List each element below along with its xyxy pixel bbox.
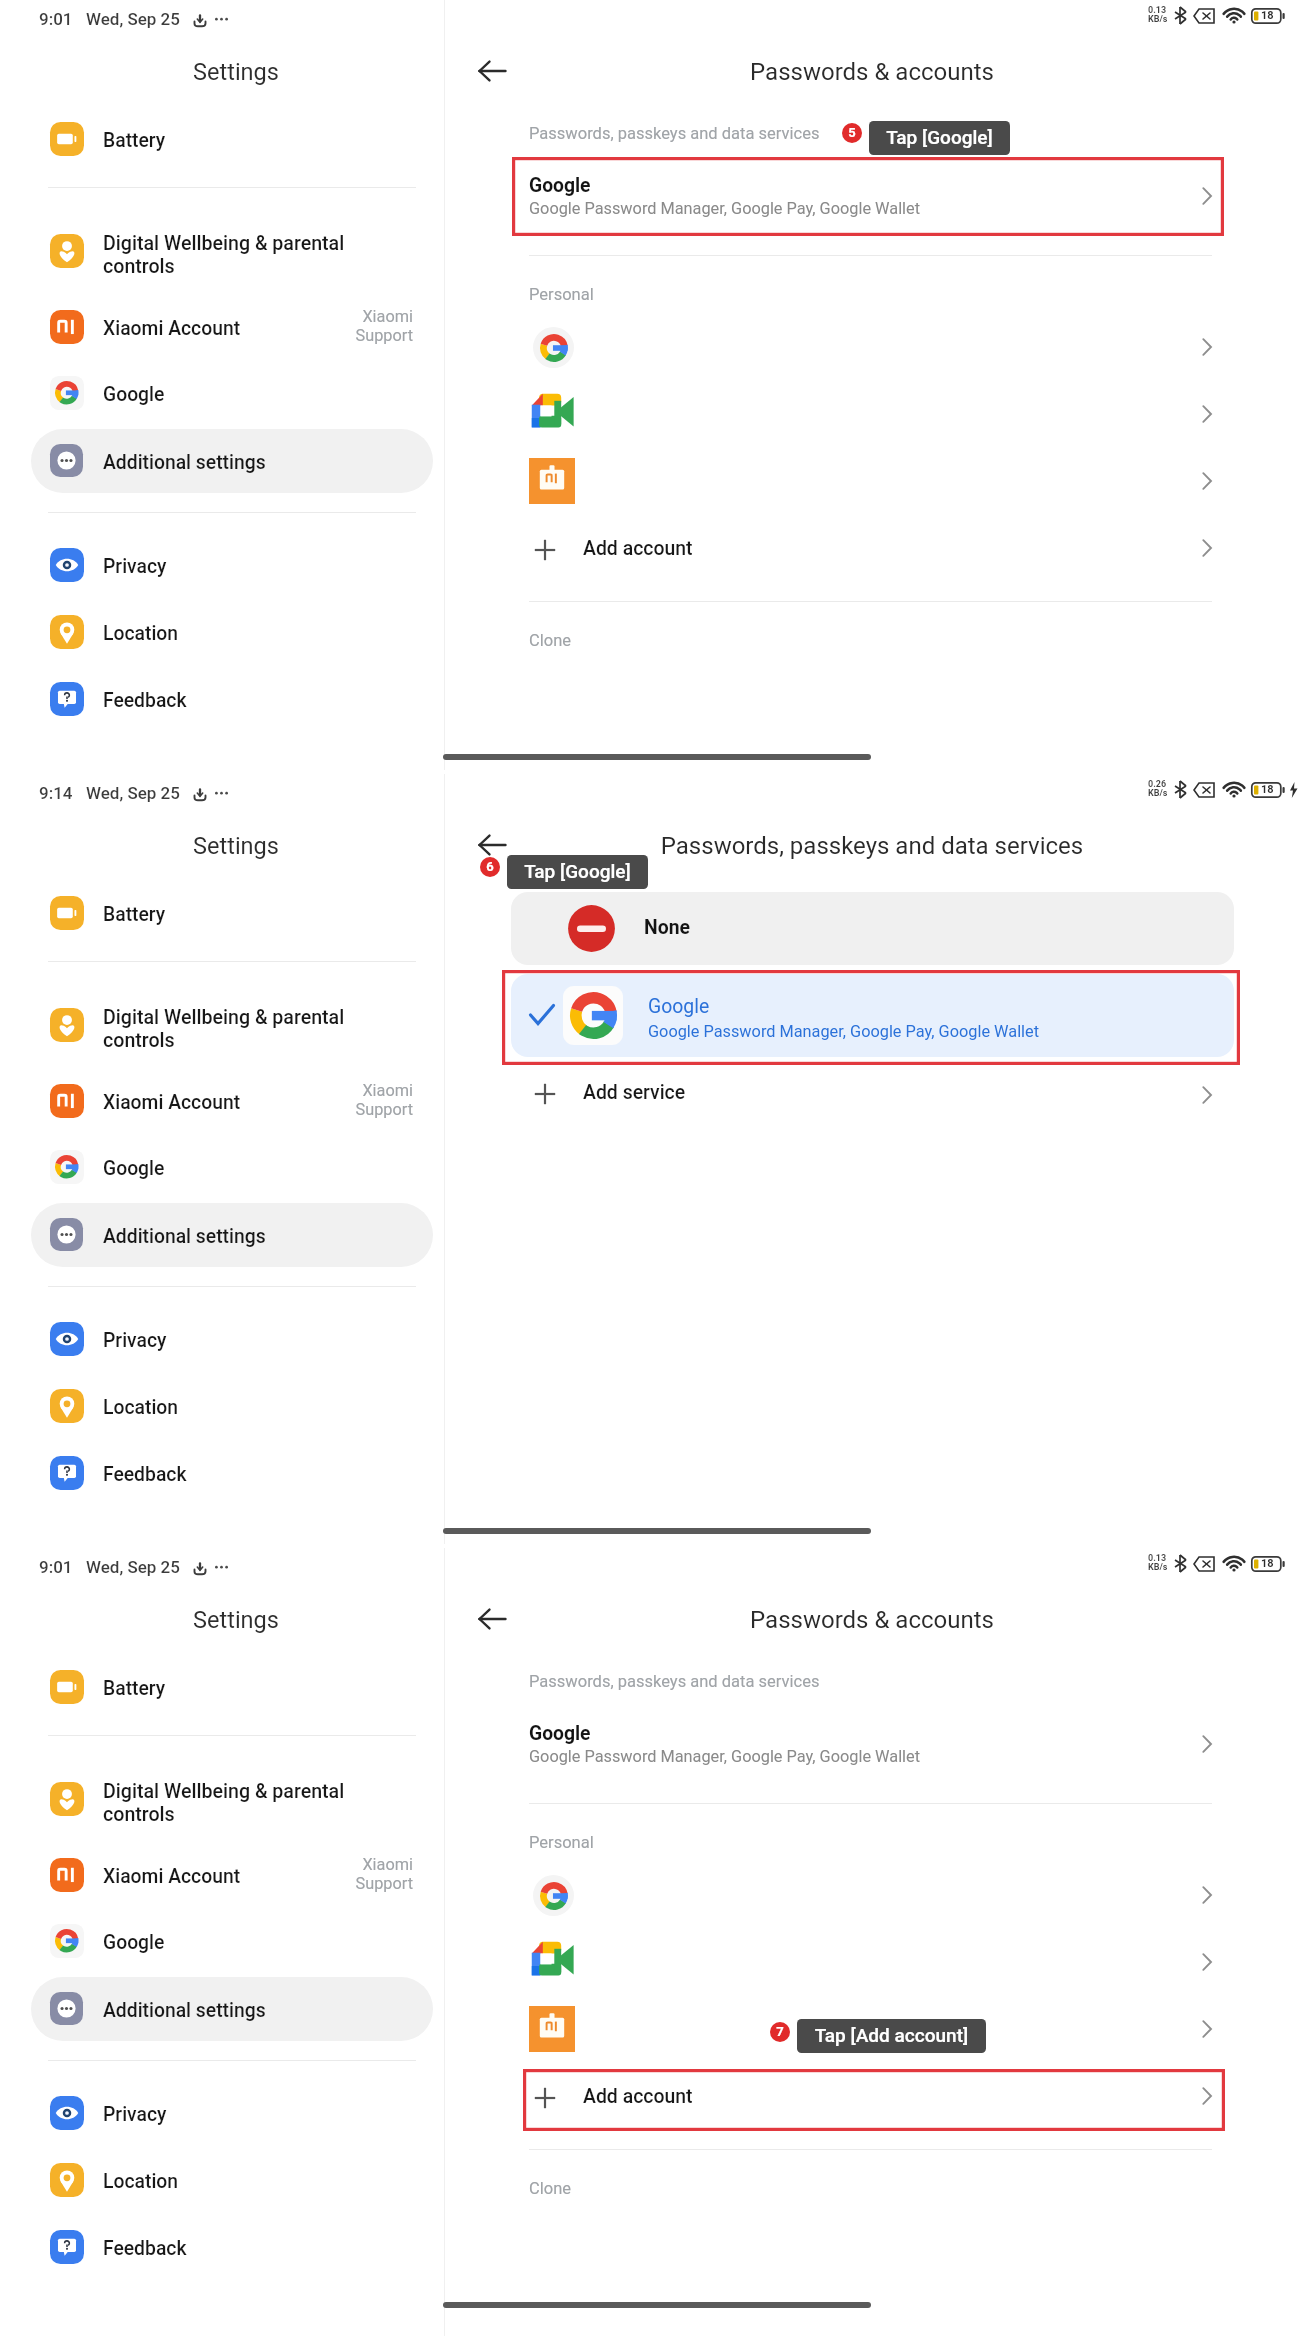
- staticText: 18: [1261, 783, 1274, 796]
- button[interactable]: [30, 1445, 434, 1502]
- button[interactable]: [30, 365, 434, 422]
- staticText: Feedback: [103, 689, 187, 712]
- button[interactable]: [30, 299, 434, 356]
- staticText: Settings: [14, 58, 458, 86]
- staticText: Google: [648, 995, 710, 1018]
- staticText: Feedback: [103, 1463, 187, 1486]
- button[interactable]: [30, 992, 434, 1060]
- staticText: Digital Wellbeing & parental controls: [103, 1780, 423, 1826]
- button[interactable]: Mi account: [512, 2000, 1224, 2058]
- button[interactable]: Google Meet account: [512, 385, 1224, 443]
- staticText: Battery: [103, 903, 166, 926]
- staticText: Google: [529, 1722, 591, 1745]
- staticText: Personal: [529, 1833, 594, 1852]
- staticText: Xiaomi Support: [293, 1855, 413, 1893]
- button[interactable]: [30, 1913, 434, 1970]
- button[interactable]: [30, 2085, 434, 2142]
- button[interactable]: Google Meet account: [512, 1933, 1224, 1991]
- staticText: Google Password Manager, Google Pay, Goo…: [529, 1747, 921, 1766]
- button[interactable]: [30, 2152, 434, 2209]
- button[interactable]: [30, 1139, 434, 1196]
- button[interactable]: [30, 671, 434, 728]
- staticText: Wed, Sep 25: [86, 783, 180, 803]
- staticText: 9:14: [39, 783, 73, 803]
- staticText: Tap [Google]: [869, 126, 1010, 148]
- staticText: Settings: [14, 1606, 458, 1634]
- button[interactable]: [509, 1066, 1231, 1124]
- staticText: Personal: [529, 285, 594, 304]
- staticText: 18: [1261, 1557, 1274, 1570]
- button[interactable]: Back: [466, 46, 520, 100]
- staticText: Additional settings: [103, 1225, 266, 1248]
- button[interactable]: Back: [466, 1594, 520, 1648]
- staticText: None: [644, 916, 691, 939]
- button[interactable]: [30, 1378, 434, 1435]
- staticText: Battery: [103, 129, 166, 152]
- staticText: Passwords, passkeys and data services: [529, 124, 820, 143]
- staticText: Settings: [14, 832, 458, 860]
- button[interactable]: [30, 2219, 434, 2276]
- staticText: Privacy: [103, 1329, 167, 1352]
- staticText: Xiaomi Account: [103, 1091, 241, 1114]
- staticText: Digital Wellbeing & parental controls: [103, 1006, 423, 1052]
- staticText: Passwords, passkeys and data services: [522, 832, 1222, 860]
- staticText: Google: [103, 1931, 165, 1954]
- staticText: 0.13: [1148, 1553, 1167, 1564]
- button[interactable]: [31, 429, 433, 493]
- staticText: Wed, Sep 25: [86, 9, 180, 29]
- staticText: Location: [103, 1396, 179, 1419]
- button[interactable]: Google account: [512, 318, 1224, 376]
- button[interactable]: [30, 1766, 434, 1834]
- button[interactable]: [523, 521, 1225, 583]
- staticText: 0.26: [1148, 779, 1167, 790]
- staticText: Privacy: [103, 555, 167, 578]
- button[interactable]: Mi account: [512, 452, 1224, 510]
- staticText: Privacy: [103, 2103, 167, 2126]
- button[interactable]: Back: [466, 820, 520, 874]
- staticText: 5: [842, 125, 862, 140]
- button[interactable]: [30, 604, 434, 661]
- staticText: 0.13: [1148, 5, 1167, 16]
- staticText: Additional settings: [103, 1999, 266, 2022]
- button[interactable]: [30, 1311, 434, 1368]
- staticText: Tap [Google]: [507, 860, 648, 882]
- button[interactable]: [30, 1659, 434, 1716]
- staticText: Feedback: [103, 2237, 187, 2260]
- staticText: Google Password Manager, Google Pay, Goo…: [529, 199, 921, 218]
- button[interactable]: [512, 157, 1224, 236]
- staticText: KB/s: [1148, 788, 1168, 799]
- staticText: Xiaomi Account: [103, 317, 241, 340]
- button[interactable]: [30, 1073, 434, 1130]
- button[interactable]: [30, 537, 434, 594]
- button[interactable]: [30, 885, 434, 942]
- staticText: Clone: [529, 631, 572, 650]
- staticText: Battery: [103, 1677, 166, 1700]
- staticText: 9:01: [39, 1557, 73, 1577]
- button[interactable]: [511, 892, 1234, 965]
- button[interactable]: Google account: [512, 1866, 1224, 1924]
- staticText: Clone: [529, 2179, 572, 2198]
- staticText: 6: [480, 859, 500, 874]
- staticText: Location: [103, 2170, 179, 2193]
- staticText: Add service: [583, 1081, 686, 1104]
- staticText: Passwords, passkeys and data services: [529, 1672, 820, 1691]
- button[interactable]: [31, 1977, 433, 2041]
- button[interactable]: [523, 2069, 1225, 2131]
- staticText: Google: [103, 383, 165, 406]
- staticText: Google: [529, 174, 591, 197]
- button[interactable]: [30, 218, 434, 286]
- button[interactable]: [30, 111, 434, 168]
- staticText: Wed, Sep 25: [86, 1557, 180, 1577]
- staticText: 9:01: [39, 9, 73, 29]
- staticText: Add account: [583, 2085, 693, 2108]
- button[interactable]: [512, 1705, 1224, 1784]
- staticText: Google: [103, 1157, 165, 1180]
- staticText: Google Password Manager, Google Pay, Goo…: [648, 1022, 1040, 1041]
- staticText: Xiaomi Account: [103, 1865, 241, 1888]
- button[interactable]: [31, 1203, 433, 1267]
- staticText: Tap [Add account]: [797, 2024, 986, 2046]
- staticText: 18: [1261, 9, 1274, 22]
- staticText: KB/s: [1148, 1562, 1168, 1573]
- button[interactable]: [30, 1847, 434, 1904]
- button[interactable]: [511, 974, 1234, 1057]
